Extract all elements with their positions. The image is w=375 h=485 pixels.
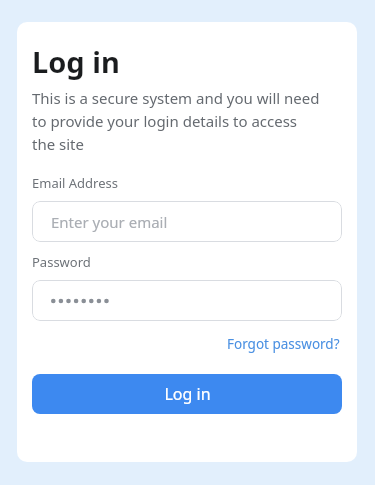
button[interactable]: Forgot password? bbox=[225, 333, 342, 355]
staticText: Log in bbox=[164, 383, 211, 405]
other: Password entered bbox=[51, 296, 109, 306]
button[interactable]: Password entered bbox=[32, 280, 342, 321]
staticText: Log in bbox=[32, 42, 120, 81]
staticText: Enter your email bbox=[51, 212, 168, 232]
staticText: This is a secure system and you will nee… bbox=[32, 88, 322, 154]
staticText: Password bbox=[32, 253, 91, 271]
staticText: Email Address bbox=[32, 174, 118, 192]
staticText: Forgot password? bbox=[227, 335, 340, 353]
button[interactable]: Log in bbox=[32, 374, 342, 414]
button[interactable]: Enter your email bbox=[32, 201, 342, 242]
